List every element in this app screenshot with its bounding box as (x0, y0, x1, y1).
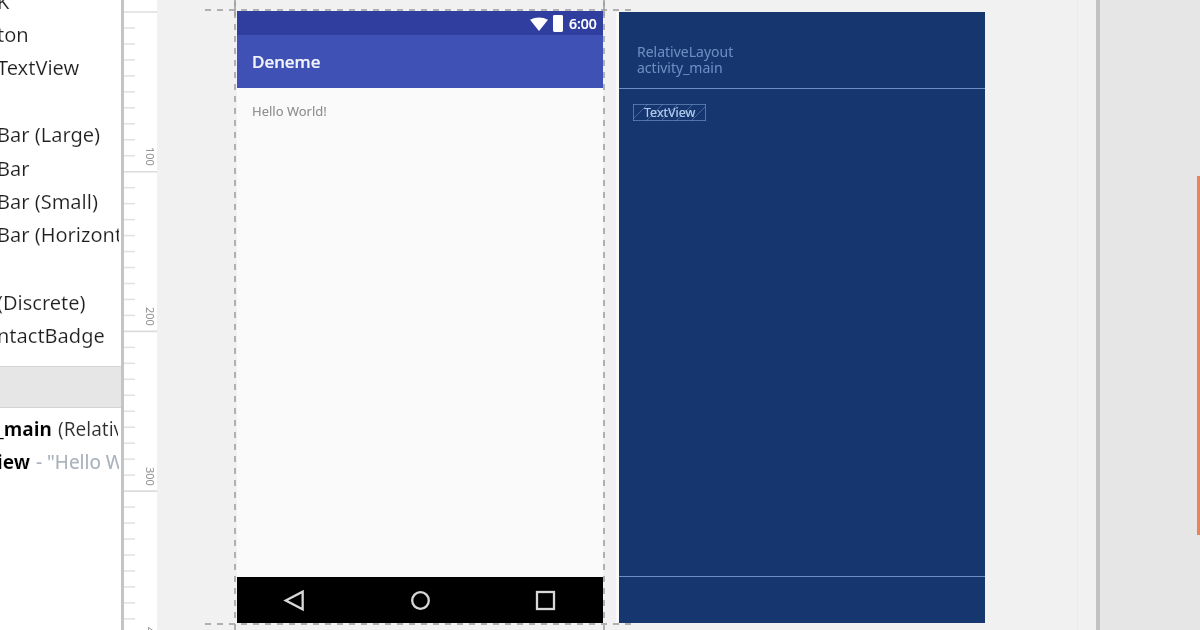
staticText: (Discrete) (0, 289, 86, 316)
staticText: Bar (Small) (0, 188, 98, 215)
staticText: Bar (0, 155, 30, 182)
staticText: 400 (143, 627, 158, 630)
button[interactable]: Recents (523, 578, 567, 622)
button[interactable]: TextView (0, 51, 119, 84)
staticText: Hello World! (252, 102, 327, 120)
button[interactable]: ntactBadge (0, 319, 119, 352)
button[interactable]: iew (0, 449, 119, 475)
button[interactable]: Home (398, 578, 442, 622)
button[interactable]: Back (272, 578, 316, 622)
staticText: K (0, 0, 10, 15)
staticText: ton (0, 21, 29, 48)
button[interactable]: Bar (Large) (0, 118, 119, 151)
staticText: 6:00 (569, 14, 597, 33)
staticText: 100 (143, 147, 158, 166)
staticText: RelativeLayout (637, 42, 734, 61)
button[interactable]: (Discrete) (0, 286, 119, 319)
staticText: Bar (Large) (0, 121, 101, 148)
staticText: 200 (143, 307, 158, 326)
staticText: Deneme (252, 50, 321, 73)
staticText: TextView (0, 54, 80, 81)
button[interactable]: Bar (Horizont (0, 218, 119, 251)
button[interactable]: _main (0, 416, 118, 442)
button[interactable]: Bar (0, 152, 119, 185)
staticText: iew (0, 449, 30, 475)
staticText: TextView (644, 104, 696, 121)
staticText: activity_main (637, 58, 723, 77)
button[interactable]: K (0, 0, 119, 18)
staticText: ntactBadge (0, 322, 105, 349)
staticText: 300 (143, 467, 158, 486)
staticText: _main (0, 416, 52, 442)
staticText: (RelativeLayout) (58, 416, 118, 442)
button[interactable]: Bar (Small) (0, 185, 119, 218)
staticText: - "Hello World!" (36, 449, 119, 475)
staticText: Bar (Horizont (0, 221, 119, 248)
button[interactable]: ton (0, 18, 119, 51)
